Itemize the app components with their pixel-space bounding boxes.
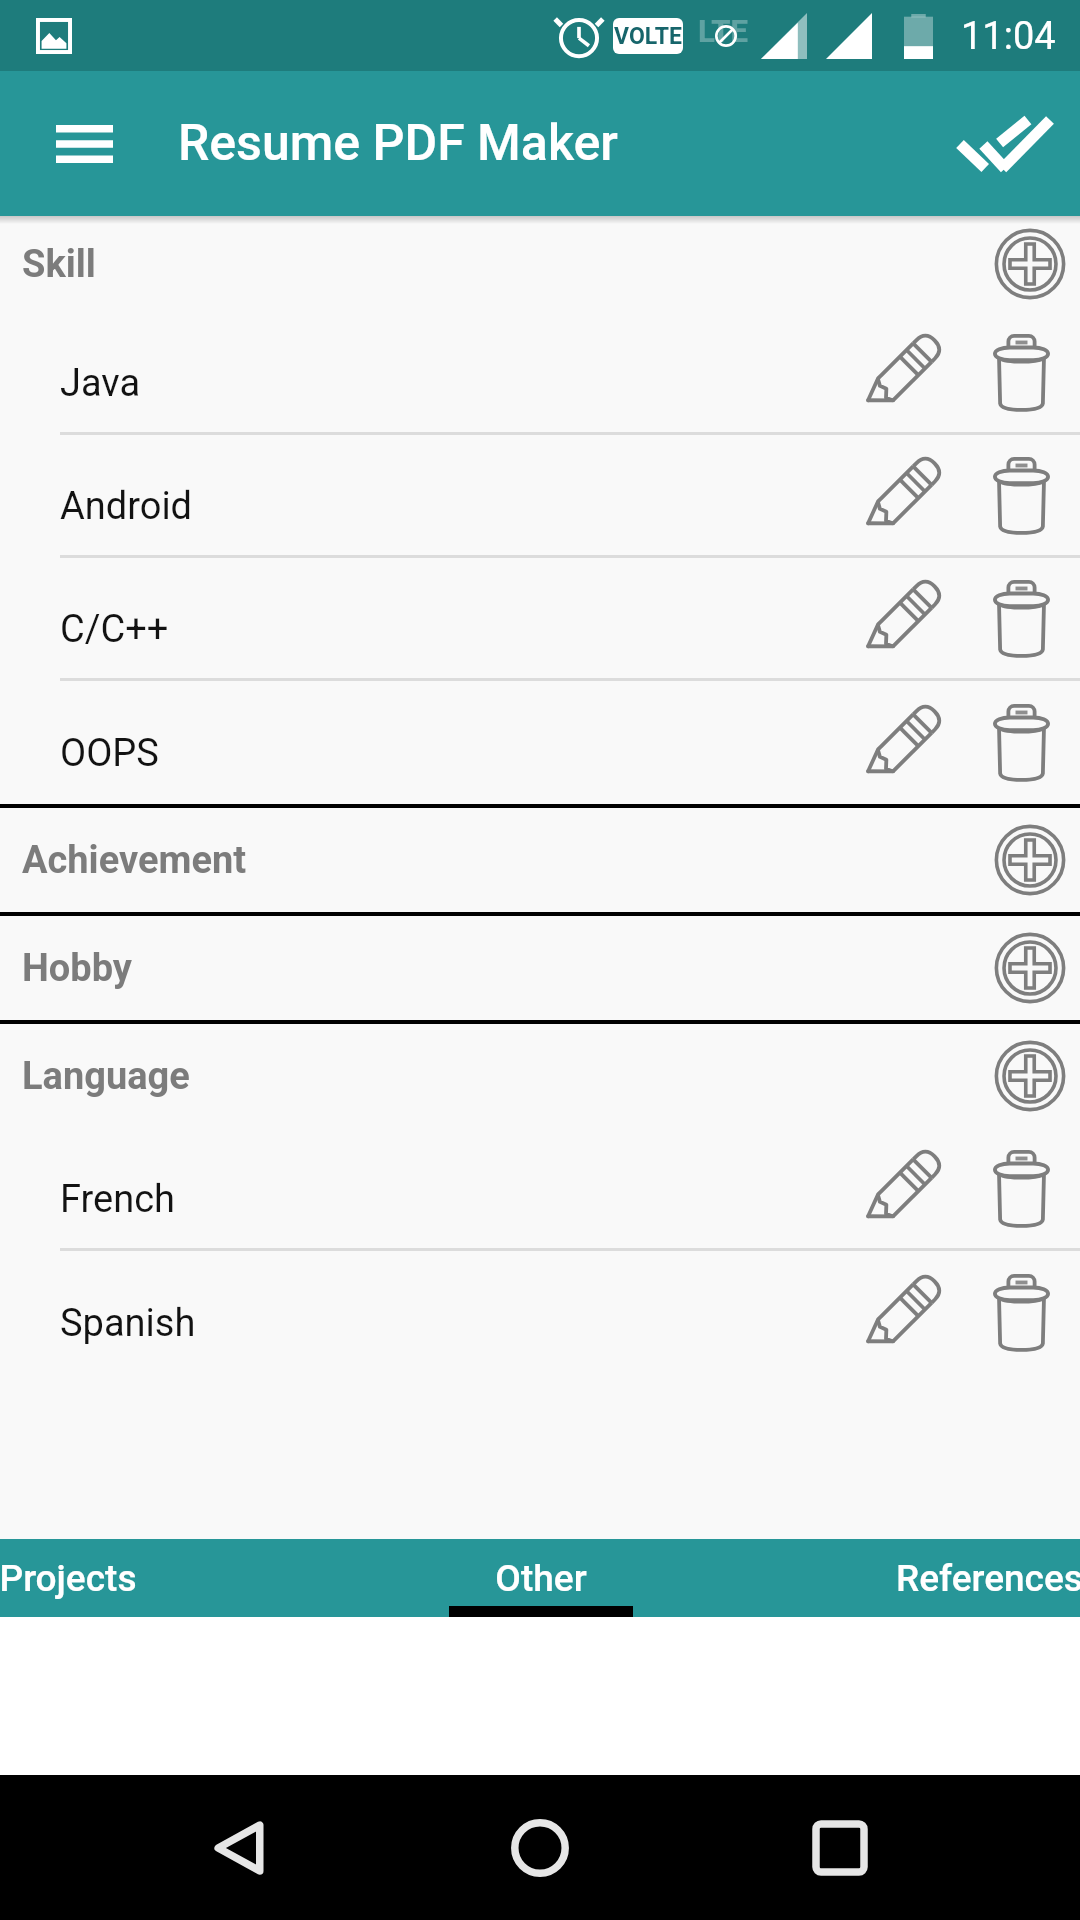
button[interactable]: Add Language bbox=[980, 1024, 1080, 1128]
button[interactable]: Projects bbox=[0, 1539, 298, 1617]
staticText: VOLTE bbox=[614, 23, 682, 50]
staticText: OOPS bbox=[60, 731, 844, 776]
button[interactable]: Edit French bbox=[844, 1128, 962, 1248]
button[interactable]: Delete C/C++ bbox=[962, 558, 1080, 678]
button[interactable]: Delete Spanish bbox=[962, 1251, 1080, 1374]
button[interactable]: Add Hobby bbox=[980, 916, 1080, 1020]
staticText: C/C++ bbox=[60, 607, 844, 652]
button[interactable]: Edit Android bbox=[844, 435, 962, 555]
staticText: LTE bbox=[698, 13, 748, 49]
staticText: Achievement bbox=[22, 838, 247, 883]
button[interactable]: Delete French bbox=[962, 1128, 1080, 1248]
staticText: Resume PDF Maker bbox=[178, 114, 618, 173]
button[interactable]: Edit C/C++ bbox=[844, 558, 962, 678]
staticText: 11:04 bbox=[961, 14, 1056, 59]
staticText: Hobby bbox=[22, 946, 132, 991]
button[interactable]: Add Achievement bbox=[980, 808, 1080, 912]
button[interactable]: Edit OOPS bbox=[844, 681, 962, 804]
button[interactable]: Back bbox=[180, 1788, 300, 1908]
staticText: References bbox=[896, 1557, 1080, 1600]
button[interactable]: Add Skill bbox=[980, 216, 1080, 312]
button[interactable]: Home bbox=[480, 1788, 600, 1908]
button[interactable]: Done all bbox=[930, 71, 1080, 216]
button[interactable]: Delete Android bbox=[962, 435, 1080, 555]
staticText: Java bbox=[60, 361, 844, 406]
button[interactable]: Delete Java bbox=[962, 312, 1080, 432]
staticText: Projects bbox=[0, 1557, 137, 1600]
staticText: Skill bbox=[22, 242, 96, 287]
staticText: Spanish bbox=[60, 1301, 844, 1346]
button[interactable]: References bbox=[759, 1539, 1080, 1617]
button[interactable]: Edit Spanish bbox=[844, 1251, 962, 1374]
staticText: Other bbox=[495, 1557, 587, 1600]
button[interactable]: Delete OOPS bbox=[962, 681, 1080, 804]
button[interactable]: Open navigation menu bbox=[0, 71, 168, 216]
button[interactable]: Other bbox=[311, 1539, 771, 1617]
button[interactable]: Edit Java bbox=[844, 312, 962, 432]
button[interactable]: Recent apps bbox=[780, 1788, 900, 1908]
staticText: French bbox=[60, 1177, 844, 1222]
staticText: Android bbox=[60, 484, 844, 529]
staticText: Language bbox=[22, 1054, 190, 1099]
